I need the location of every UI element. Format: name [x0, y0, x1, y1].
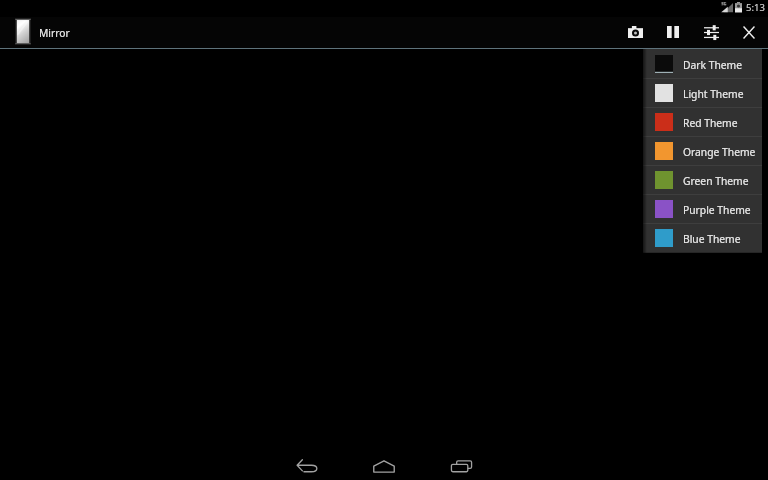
button[interactable]: Red Theme: [643, 108, 762, 136]
staticText: 5:13: [746, 1, 765, 14]
button[interactable]: Home: [356, 450, 412, 480]
button[interactable]: Light Theme: [643, 79, 762, 107]
button[interactable]: Blue Theme: [643, 224, 762, 252]
staticText: Green Theme: [683, 174, 749, 188]
button[interactable]: Green Theme: [643, 166, 762, 194]
button[interactable]: Recent apps: [433, 450, 489, 480]
button[interactable]: Purple Theme: [643, 195, 762, 223]
button[interactable]: Orange Theme: [643, 137, 762, 165]
staticText: Orange Theme: [683, 145, 756, 159]
staticText: Light Theme: [683, 87, 744, 101]
button[interactable]: Close: [730, 17, 768, 47]
button[interactable]: Pause: [654, 17, 692, 47]
staticText: Blue Theme: [683, 232, 741, 246]
button[interactable]: Settings: [692, 17, 730, 47]
staticText: Mirror: [39, 26, 70, 40]
staticText: Dark Theme: [683, 58, 743, 72]
staticText: Purple Theme: [683, 203, 751, 217]
button[interactable]: Back: [279, 450, 335, 480]
staticText: Red Theme: [683, 116, 738, 130]
button[interactable]: Dark Theme: [643, 49, 762, 78]
button[interactable]: Take photo: [616, 17, 654, 47]
